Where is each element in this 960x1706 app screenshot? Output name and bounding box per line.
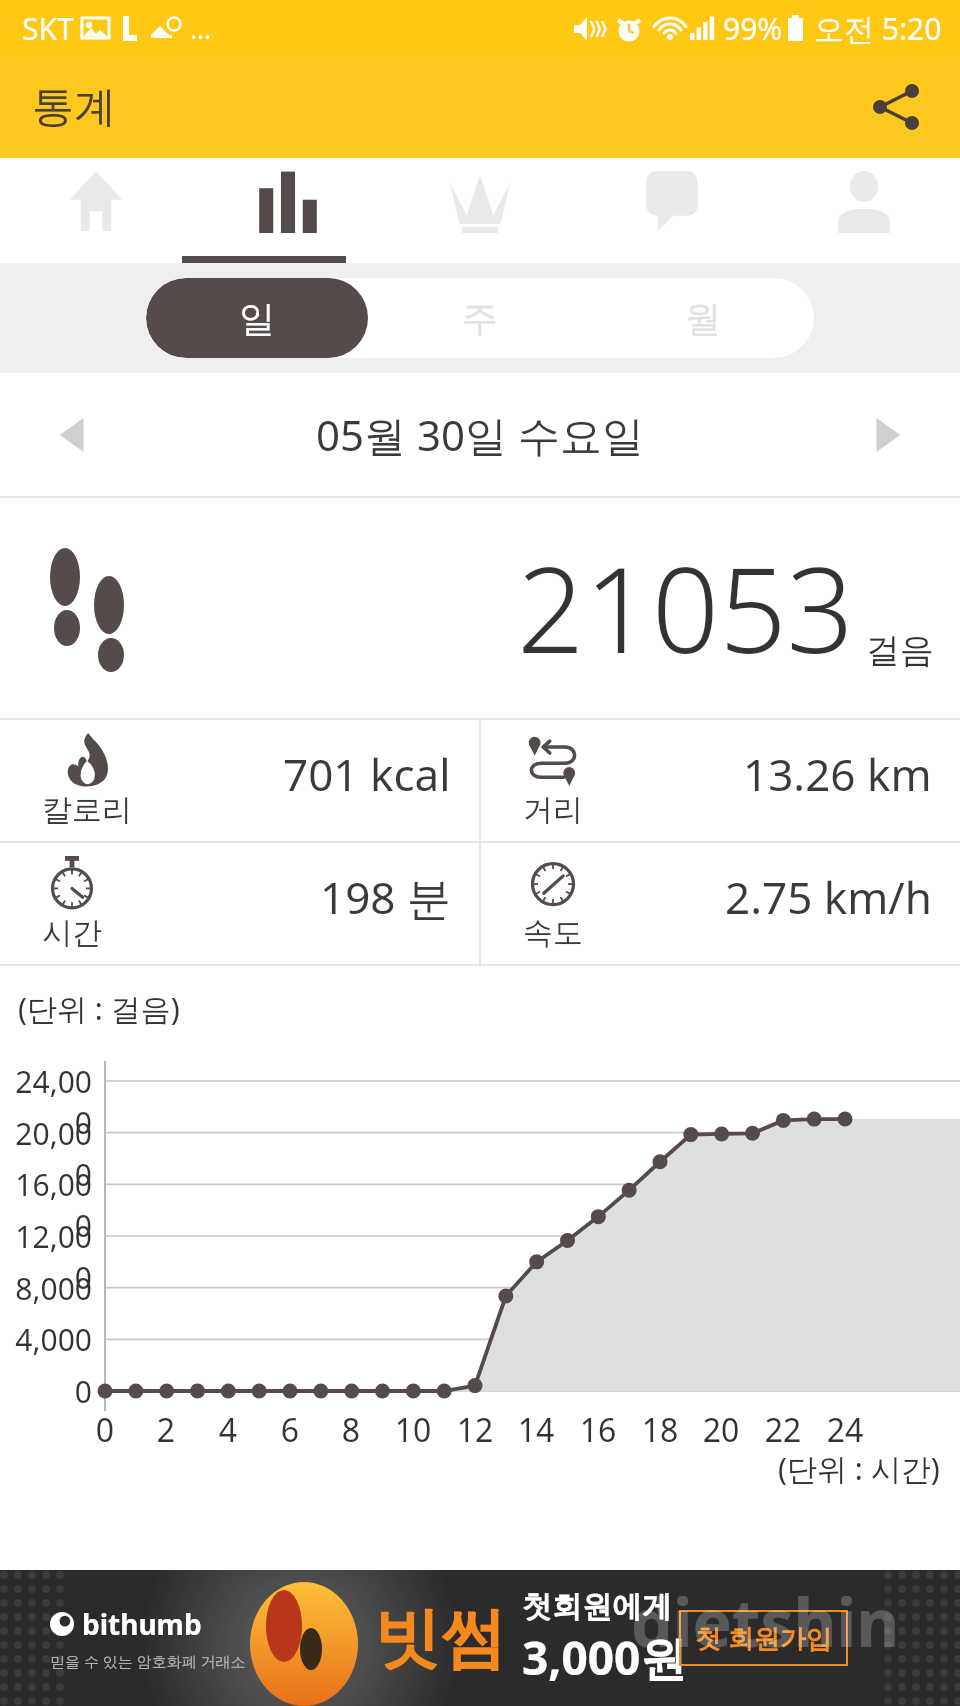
button[interactable]: 월 (591, 278, 814, 358)
staticText: 첫 회원가입 (695, 1620, 832, 1656)
staticText: 속도 (523, 914, 583, 952)
staticText: 믿을 수 있는 암호화폐 거래소 (50, 1651, 246, 1671)
staticText: 8,000 (0, 1268, 92, 1309)
button[interactable]: 주 (368, 278, 591, 358)
staticText: 24 (815, 1408, 875, 1452)
staticText: 24,000 (0, 1061, 92, 1143)
staticText: 걸음 (866, 629, 934, 672)
staticText: 198 분 (320, 867, 451, 927)
button[interactable]: Statistics (192, 158, 384, 263)
staticText: 월 (685, 296, 721, 341)
staticText: 4 (198, 1408, 258, 1452)
staticText: 시간 (42, 914, 102, 952)
staticText: 2 (136, 1408, 196, 1452)
staticText: 3,000원 (522, 1626, 687, 1689)
staticText: 8 (321, 1408, 381, 1452)
staticText: dietshin (631, 1576, 900, 1666)
staticText: 0 (0, 1371, 92, 1412)
button[interactable]: 시간 (0, 843, 479, 964)
staticText: 14 (506, 1408, 566, 1452)
staticText: (단위 : 시간) (778, 1448, 940, 1489)
staticText: SKT (22, 8, 74, 49)
staticText: 21053 (517, 527, 854, 688)
staticText: 4,000 (0, 1319, 92, 1360)
button[interactable]: Profile (768, 158, 960, 263)
staticText: 12 (445, 1408, 505, 1452)
staticText: 20 (691, 1408, 751, 1452)
button[interactable]: Next day (850, 399, 922, 471)
staticText: 6 (260, 1408, 320, 1452)
button[interactable]: 칼로리 (0, 720, 479, 841)
staticText: 16 (568, 1408, 628, 1452)
staticText: ... (190, 11, 211, 46)
staticText: 0 (75, 1408, 135, 1452)
staticText: 2.75 km/h (725, 867, 932, 927)
staticText: 12,000 (0, 1216, 92, 1298)
staticText: 일 (239, 296, 275, 341)
staticText: 701 kcal (283, 744, 451, 804)
staticText: 빗썸 (374, 1597, 506, 1680)
staticText: bithumb (82, 1605, 202, 1643)
staticText: 칼로리 (42, 791, 132, 829)
button[interactable]: 속도 (481, 843, 960, 964)
staticText: 18 (630, 1408, 690, 1452)
staticText: (단위 : 걸음) (18, 988, 180, 1029)
staticText: 첫회원에게 (522, 1588, 672, 1626)
staticText: 99% (723, 8, 783, 49)
button[interactable]: Community (576, 158, 768, 263)
staticText: 통계 (32, 81, 116, 134)
staticText: 22 (753, 1408, 813, 1452)
button[interactable]: Advertisement (0, 1570, 960, 1706)
button[interactable]: Home (0, 158, 192, 263)
button[interactable]: 거리 (481, 720, 960, 841)
staticText: 20,000 (0, 1113, 92, 1195)
staticText: 주 (462, 296, 498, 341)
button[interactable]: Previous day (38, 399, 110, 471)
button[interactable]: Share (858, 69, 934, 145)
staticText: 오전 5:20 (814, 8, 942, 49)
staticText: 13.26 km (743, 744, 932, 804)
button[interactable]: 일 (146, 278, 368, 358)
staticText: 05월 30일 수요일 (316, 406, 644, 463)
staticText: 10 (383, 1408, 443, 1452)
button[interactable]: Ranking (384, 158, 576, 263)
staticText: 거리 (523, 791, 583, 829)
staticText: 16,000 (0, 1164, 92, 1246)
